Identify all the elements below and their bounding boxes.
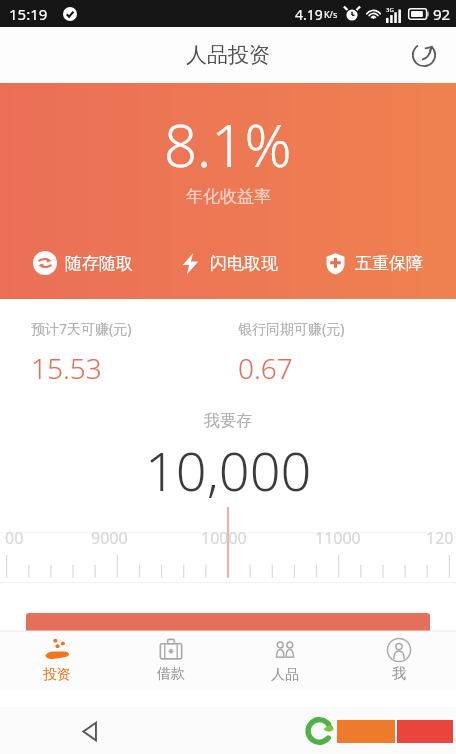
button[interactable]: 五重保障	[301, 248, 446, 279]
staticText: 我	[392, 665, 406, 683]
staticText: 15.53	[31, 349, 102, 387]
staticText: 年化收益率	[186, 186, 271, 207]
button[interactable]: Back	[70, 711, 110, 751]
button[interactable]: 我	[342, 631, 456, 689]
staticText: 10000	[201, 527, 247, 549]
staticText: 0.67	[238, 349, 293, 387]
staticText: K/s	[324, 8, 338, 20]
staticText: 人品投资	[186, 42, 270, 68]
staticText: 借款	[157, 665, 185, 683]
staticText: 投资	[43, 666, 71, 684]
button[interactable]: Share	[401, 32, 447, 78]
staticText: 4.19	[295, 5, 323, 24]
staticText: 9000	[91, 527, 128, 549]
staticText: 闪电取现	[210, 253, 278, 274]
button[interactable]: 随存随取	[10, 247, 156, 279]
staticText: 10,000	[145, 433, 312, 507]
staticText: 3G	[386, 6, 394, 14]
staticText: 银行同期可赚(元)	[238, 319, 345, 338]
staticText: 人品	[271, 666, 299, 684]
staticText: 我要存	[204, 411, 252, 431]
staticText: 随存随取	[65, 253, 133, 274]
button[interactable]: 人品	[228, 631, 342, 689]
staticText: 92	[433, 4, 451, 24]
staticText: 8.1%	[164, 105, 292, 184]
staticText: 五重保障	[355, 253, 423, 274]
staticText: 11000	[315, 527, 361, 549]
staticText: 120	[426, 527, 454, 549]
button[interactable]: 投资	[0, 631, 114, 689]
staticText: 00	[5, 527, 24, 549]
staticText: 预计7天可赚(元)	[31, 319, 132, 338]
button[interactable]: 借款	[114, 631, 228, 689]
button[interactable]: 闪电取现	[156, 248, 301, 279]
staticText: 15:19	[9, 4, 48, 24]
button[interactable]	[26, 613, 430, 649]
